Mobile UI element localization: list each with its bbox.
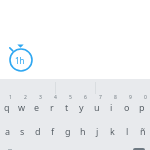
staticText: ñ [140,125,146,137]
button[interactable]: o [120,93,135,119]
staticText: r [50,101,54,113]
button[interactable]: e [30,93,45,119]
button[interactable]: y [75,93,90,119]
button[interactable]: h [75,118,90,144]
button[interactable]: g [60,118,75,144]
staticText: y [79,101,84,113]
staticText: 9 [129,94,132,101]
staticText: 1h [15,55,25,66]
button[interactable]: 1h [4,40,38,74]
staticText: 7 [99,94,102,101]
staticText: s [20,125,25,137]
staticText: j [96,125,99,137]
staticText: g [65,125,71,137]
button[interactable]: f [45,118,60,144]
staticText: p [139,101,145,113]
button[interactable]: p [135,93,150,119]
button[interactable]: s [15,118,30,144]
button[interactable]: t [60,93,75,119]
button[interactable]: l [120,118,135,144]
staticText: 5 [69,94,72,101]
staticText: k [110,125,115,137]
staticText: d [35,125,41,137]
button[interactable]: ñ [135,118,150,144]
button[interactable]: i [105,93,120,119]
button[interactable]: k [105,118,120,144]
staticText: 1 [9,94,12,101]
button[interactable]: u [90,93,105,119]
button[interactable]: d [30,118,45,144]
staticText: f [51,125,55,137]
staticText: u [94,101,100,113]
staticText: 3 [39,94,42,101]
button[interactable] [133,148,145,150]
staticText: h [80,125,86,137]
staticText: w [18,101,26,113]
staticText: q [4,101,10,113]
staticText: 2 [24,94,27,101]
staticText: i [110,101,113,113]
staticText: 8 [114,94,117,101]
staticText: e [34,101,40,113]
button[interactable]: w [15,93,30,119]
button[interactable]: q [0,93,15,119]
button[interactable]: j [90,118,105,144]
staticText: 6 [84,94,87,101]
staticText: 4 [54,94,57,101]
staticText: o [124,101,130,113]
button[interactable]: a [0,118,15,144]
staticText: t [65,101,69,113]
staticText: l [126,125,129,137]
button[interactable]: r [45,93,60,119]
staticText: a [5,125,11,137]
staticText: 0 [144,94,147,101]
